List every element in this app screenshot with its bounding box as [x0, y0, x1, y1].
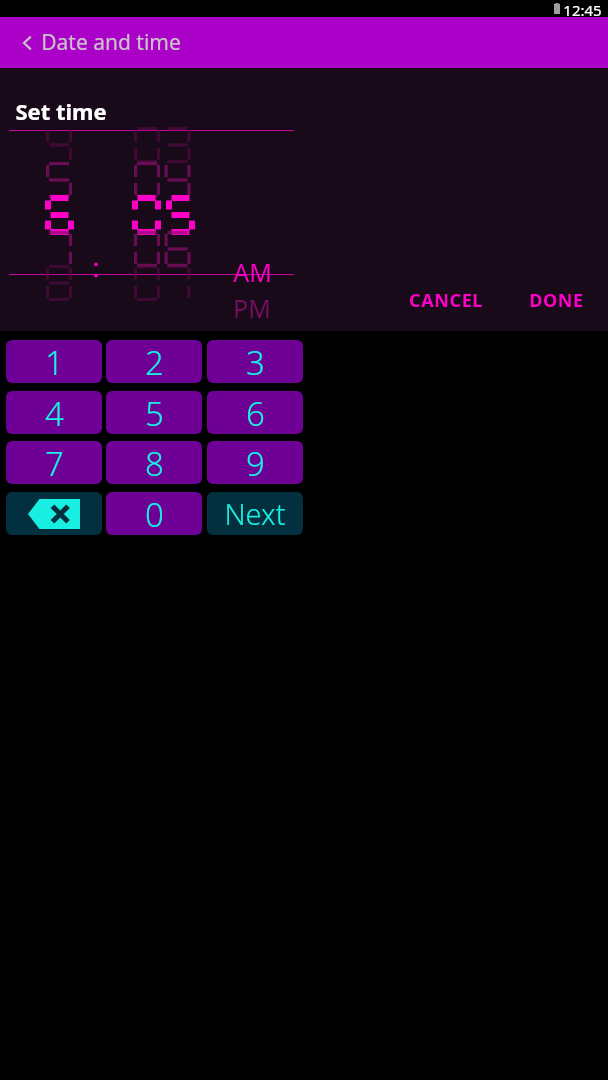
button[interactable]: 6 — [207, 391, 303, 434]
button[interactable] — [134, 162, 162, 180]
staticText: PM — [233, 291, 271, 325]
button[interactable]: 2 — [106, 340, 202, 383]
staticText: 12:45 — [563, 0, 602, 17]
button[interactable]: CANCEL — [403, 284, 489, 317]
staticText: 3 — [246, 340, 265, 383]
button[interactable]: 1 — [6, 340, 102, 383]
staticText: 9 — [246, 441, 265, 484]
staticText: 8 — [145, 441, 164, 484]
button[interactable]: Backspace — [6, 492, 102, 535]
button[interactable] — [134, 127, 162, 145]
staticText: 4 — [45, 391, 64, 434]
staticText: AM — [233, 255, 272, 289]
button[interactable] — [132, 195, 164, 215]
button[interactable] — [134, 231, 162, 249]
button[interactable]: 8 — [106, 441, 202, 484]
staticText: Set time — [15, 96, 107, 126]
button[interactable] — [45, 195, 60, 215]
button[interactable] — [46, 127, 59, 145]
button[interactable]: 3 — [207, 340, 303, 383]
staticText: CANCEL — [409, 288, 483, 313]
button[interactable] — [46, 231, 59, 249]
staticText: 7 — [45, 441, 64, 484]
button[interactable] — [46, 162, 59, 180]
staticText: 5 — [145, 391, 164, 434]
staticText: 1 — [45, 340, 64, 383]
button[interactable]: Next — [207, 492, 303, 535]
staticText: 2 — [145, 340, 164, 383]
button[interactable] — [134, 265, 162, 283]
button[interactable]: Back — [8, 23, 48, 63]
button[interactable]: 9 — [207, 441, 303, 484]
staticText: Date and time — [41, 28, 181, 57]
staticText: Next — [224, 494, 286, 533]
button[interactable] — [46, 265, 59, 283]
button[interactable]: 4 — [6, 391, 102, 434]
button[interactable]: 5 — [106, 391, 202, 434]
staticText: DONE — [529, 288, 584, 313]
button[interactable]: DONE — [523, 284, 590, 317]
button[interactable]: 7 — [6, 441, 102, 484]
staticText: 6 — [246, 391, 265, 434]
staticText: 0 — [145, 492, 164, 535]
button[interactable]: PM — [222, 291, 282, 325]
button[interactable]: 0 — [106, 492, 202, 535]
button[interactable]: AM — [222, 255, 282, 289]
